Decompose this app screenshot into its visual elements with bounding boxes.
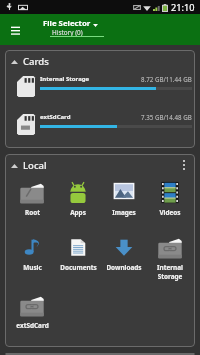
staticText: Internal Storage: [40, 75, 90, 83]
staticText: Root: [25, 208, 40, 217]
button[interactable]: Videos: [147, 176, 193, 231]
staticText: extSdCard: [16, 321, 49, 330]
button[interactable]: Downloads: [101, 231, 147, 289]
staticText: History (0): [52, 28, 83, 37]
staticText: Apps: [70, 208, 86, 217]
staticText: Images: [112, 208, 136, 217]
button[interactable]: Music: [9, 231, 55, 289]
staticText: Documents: [60, 263, 97, 272]
button[interactable]: Root: [9, 176, 55, 231]
staticText: File Selector: [43, 18, 91, 29]
staticText: Local: [23, 159, 47, 172]
button[interactable]: Images: [101, 176, 147, 231]
staticText: extSdCard: [40, 113, 71, 121]
staticText: Downloads: [106, 263, 142, 272]
staticText: 8.72 GB/11.44 GB: [141, 75, 192, 83]
staticText: Music: [23, 263, 42, 272]
button[interactable]: Navigation menu: [4, 19, 26, 41]
button[interactable]: Apps: [55, 176, 101, 231]
button[interactable]: extSdCard: [5, 110, 195, 148]
button[interactable]: File Selector: [43, 18, 98, 29]
button[interactable]: More options: [176, 157, 192, 173]
staticText: 21:10: [171, 1, 195, 14]
staticText: Videos: [159, 208, 181, 217]
staticText: Internal Storage: [157, 263, 183, 281]
staticText: Cards: [23, 55, 49, 68]
button[interactable]: Documents: [55, 231, 101, 289]
button[interactable]: Internal Storage: [5, 72, 195, 110]
button[interactable]: Internal Storage: [147, 231, 193, 289]
button[interactable]: extSdCard: [9, 289, 55, 343]
staticText: 7.35 GB/14.48 GB: [141, 113, 192, 121]
